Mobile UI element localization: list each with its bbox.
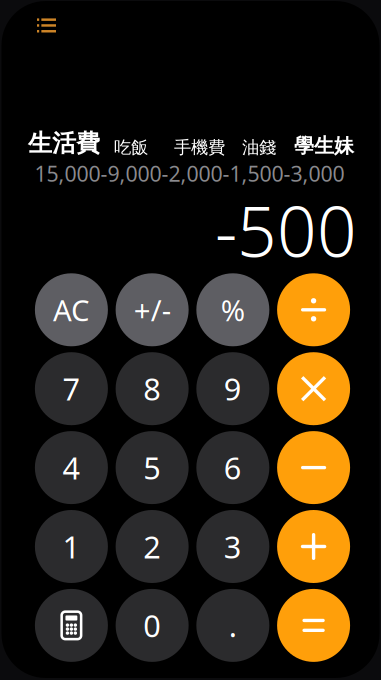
button[interactable]: History xyxy=(27,8,66,42)
staticText: 15,000-9,000-2,000-1,500-3,000 xyxy=(34,159,344,188)
button[interactable]: 3 xyxy=(196,510,269,583)
staticText: 2 xyxy=(143,526,161,567)
staticText: 8 xyxy=(143,368,161,409)
staticText: 3 xyxy=(224,526,242,567)
staticText: . xyxy=(229,605,237,646)
staticText: 手機費 xyxy=(174,137,225,158)
button[interactable]: 7 xyxy=(35,352,108,425)
button[interactable]: % xyxy=(196,273,269,346)
button[interactable]: Equals xyxy=(277,589,350,662)
staticText: 5 xyxy=(143,447,161,488)
button[interactable]: +/- xyxy=(116,273,189,346)
staticText: +/- xyxy=(134,290,171,329)
staticText: 6 xyxy=(224,447,242,488)
button[interactable]: 0 xyxy=(116,589,189,662)
staticText: 油錢 xyxy=(242,137,276,158)
button[interactable]: Calculator xyxy=(35,589,108,662)
staticText: AC xyxy=(53,290,90,329)
button[interactable]: Add xyxy=(277,510,350,583)
staticText: 9 xyxy=(224,368,242,409)
staticText: 0 xyxy=(143,605,161,646)
staticText: 7 xyxy=(62,368,80,409)
staticText: % xyxy=(221,290,245,329)
staticText: 學生妹 xyxy=(294,133,354,158)
button[interactable]: 9 xyxy=(196,352,269,425)
button[interactable]: 2 xyxy=(116,510,189,583)
button[interactable]: 1 xyxy=(35,510,108,583)
staticText: 吃飯 xyxy=(114,137,148,158)
button[interactable]: Subtract xyxy=(277,431,350,504)
button[interactable]: Multiply xyxy=(277,352,350,425)
button[interactable]: . xyxy=(196,589,269,662)
button[interactable]: 6 xyxy=(196,431,269,504)
button[interactable]: Divide xyxy=(277,273,350,346)
staticText: -500 xyxy=(215,184,357,276)
staticText: 生活費 xyxy=(28,128,100,158)
staticText: 4 xyxy=(62,447,80,488)
button[interactable]: 8 xyxy=(116,352,189,425)
staticText: 1 xyxy=(62,526,80,567)
button[interactable]: 5 xyxy=(116,431,189,504)
button[interactable]: AC xyxy=(35,273,108,346)
button[interactable]: 4 xyxy=(35,431,108,504)
